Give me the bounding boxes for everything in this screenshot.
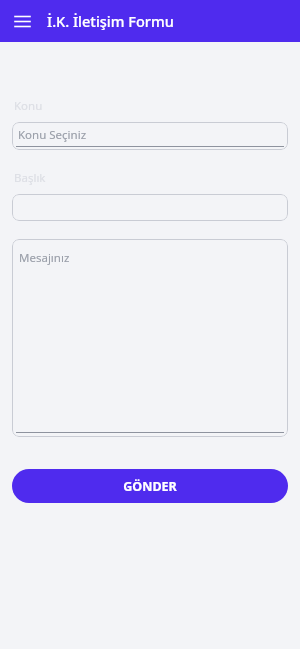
button[interactable]: Mesajınız bbox=[12, 239, 288, 437]
button[interactable]: Menu bbox=[9, 8, 35, 34]
staticText: GÖNDER bbox=[123, 478, 177, 495]
staticText: İ.K. İletişim Formu bbox=[47, 11, 174, 31]
staticText: Mesajınız bbox=[19, 250, 70, 266]
button[interactable]: Konu Seçiniz bbox=[12, 122, 288, 150]
button[interactable]: GÖNDER bbox=[12, 469, 288, 503]
button[interactable] bbox=[12, 194, 288, 221]
staticText: Konu Seçiniz bbox=[18, 127, 87, 143]
staticText: Konu bbox=[14, 98, 43, 114]
staticText: Başlık bbox=[14, 170, 46, 186]
